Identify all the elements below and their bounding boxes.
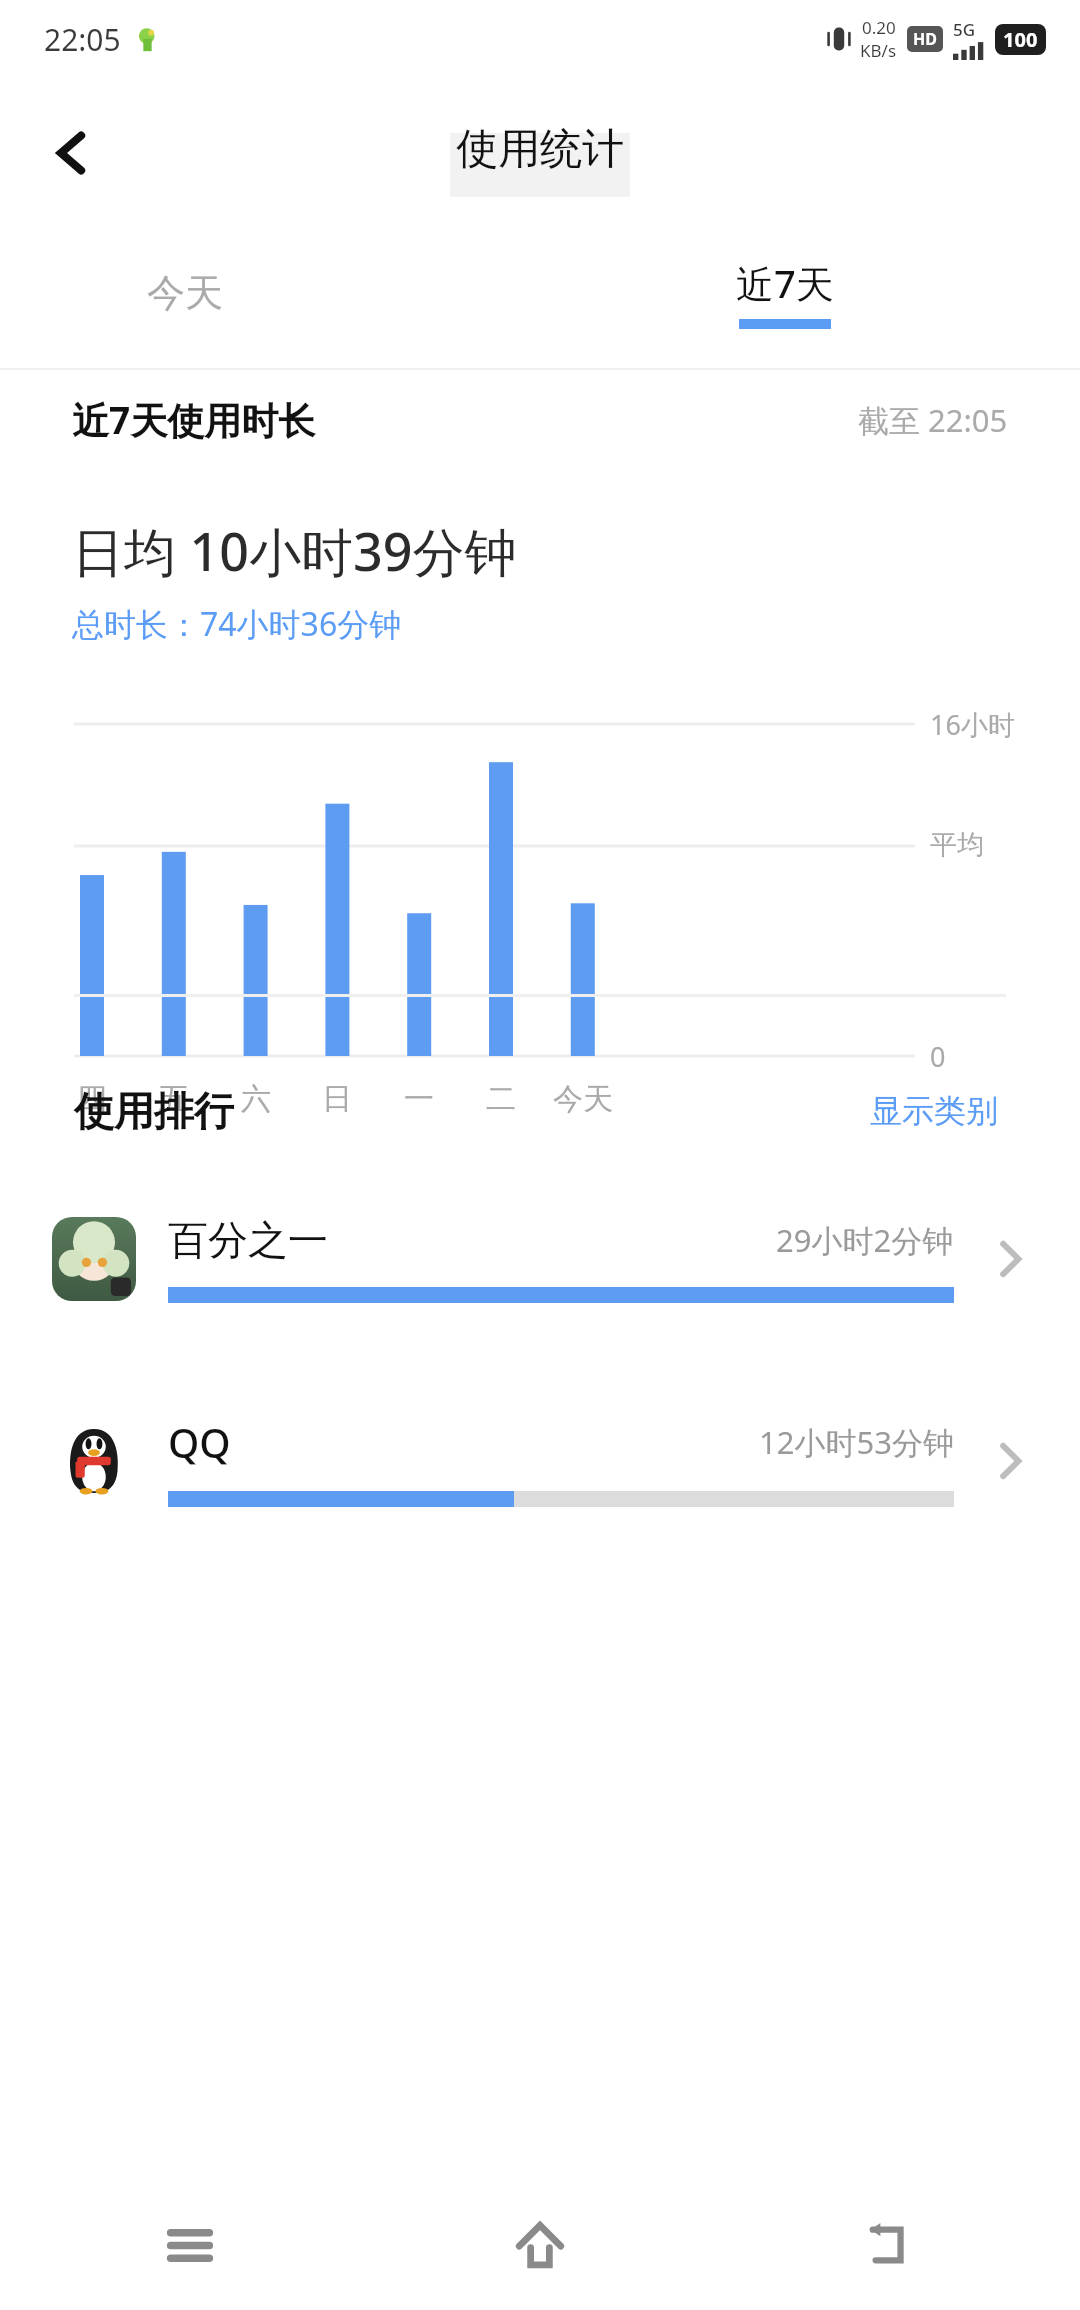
staticText: 日均 10小时39分钟: [72, 515, 517, 586]
staticText: 使用统计: [456, 123, 624, 176]
staticText: QQ: [168, 1415, 231, 1469]
staticText: 二: [486, 1080, 516, 1118]
staticText: 12小时53分钟: [759, 1421, 954, 1463]
staticText: 百分之一: [168, 1215, 328, 1265]
staticText: 22:05: [44, 19, 121, 60]
staticText: 今天: [553, 1080, 613, 1118]
button[interactable]: 今天: [70, 228, 300, 358]
staticText: 日: [322, 1080, 352, 1118]
staticText: 五: [159, 1080, 189, 1118]
staticText: 29小时2分钟: [776, 1219, 954, 1261]
button[interactable]: 百分之一: [0, 1199, 1080, 1319]
staticText: 0.20: [862, 16, 896, 39]
staticText: 今天: [147, 269, 223, 317]
staticText: 近7天: [736, 257, 834, 309]
button[interactable]: 主页: [480, 2185, 600, 2305]
staticText: 四: [77, 1080, 107, 1118]
staticText: HD: [913, 28, 937, 50]
button[interactable]: 最近任务: [130, 2185, 250, 2305]
staticText: KB/s: [860, 39, 897, 62]
staticText: 六: [241, 1080, 271, 1118]
other: 查看详情: [980, 1431, 1040, 1491]
staticText: 一: [404, 1080, 434, 1118]
staticText: 0: [930, 1038, 946, 1075]
button[interactable]: 显示类别: [862, 1083, 1006, 1139]
staticText: 16小时: [930, 706, 1015, 743]
other: 查看详情: [980, 1229, 1040, 1289]
staticText: 平均: [930, 828, 984, 862]
staticText: 截至 22:05: [858, 399, 1008, 441]
staticText: 100: [1003, 26, 1038, 53]
button[interactable]: 近7天: [670, 228, 900, 358]
staticText: 5G: [953, 18, 976, 41]
staticText: 总时长：74小时36分钟: [72, 602, 402, 646]
staticText: 使用排行: [74, 1086, 234, 1136]
staticText: 显示类别: [870, 1091, 998, 1131]
staticText: 近7天使用时长: [72, 394, 316, 445]
button[interactable]: QQ: [0, 1401, 1080, 1521]
button[interactable]: 返回: [830, 2185, 950, 2305]
button[interactable]: 返回: [30, 111, 114, 195]
